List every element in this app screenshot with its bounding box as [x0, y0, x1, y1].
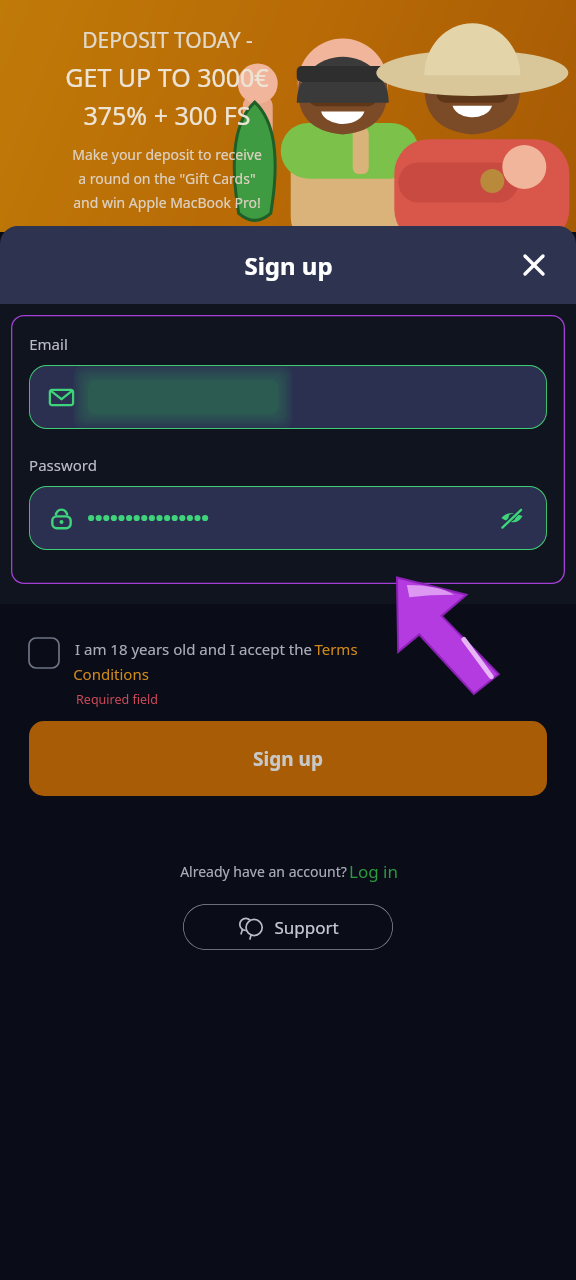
staticText: Terms	[314, 639, 358, 659]
staticText: I am 18 years old and I accept the	[73, 639, 314, 659]
button[interactable]: Conditions	[73, 664, 149, 684]
button[interactable]: Sign up	[29, 721, 547, 796]
staticText: Required field	[76, 691, 158, 708]
staticText: Support	[274, 916, 339, 939]
staticText: Sign up	[253, 746, 323, 772]
staticText: Email	[29, 334, 68, 354]
staticText: Log in	[349, 860, 398, 883]
staticText: DEPOSIT TODAY -	[82, 26, 253, 55]
staticText: Already have an account?	[178, 862, 349, 881]
button[interactable]: Support	[183, 904, 393, 950]
button[interactable]: Hide password	[496, 502, 528, 534]
staticText: Password	[29, 455, 97, 475]
staticText: Sign up	[244, 249, 333, 282]
button[interactable]: Terms	[314, 639, 358, 659]
button[interactable]: Log in	[349, 860, 398, 883]
staticText: and win Apple MacBook Pro!	[73, 193, 261, 212]
staticText: a round on the "Gift Cards"	[78, 169, 256, 188]
button[interactable]	[29, 365, 547, 429]
button[interactable]: Hide password	[29, 486, 547, 550]
button[interactable]: Close	[514, 245, 554, 285]
staticText: Make your deposit to receive	[72, 145, 262, 164]
staticText: Conditions	[73, 664, 149, 684]
button[interactable]: Accept terms checkbox	[29, 638, 59, 668]
staticText: 375% + 300 FS	[83, 98, 251, 132]
staticText: GET UP TO 3000€	[65, 60, 269, 94]
